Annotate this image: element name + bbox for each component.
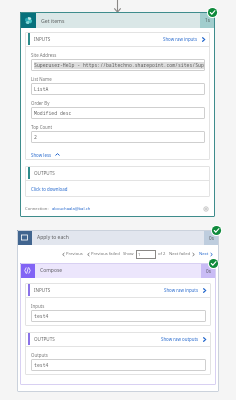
staticText: Next [199, 251, 209, 257]
button[interactable]: Next failed [169, 251, 196, 257]
button[interactable]: Apply to each [17, 230, 219, 245]
staticText: Previous failed [91, 251, 120, 257]
staticText: Show raw inputs [164, 287, 199, 293]
button[interactable]: Next [199, 251, 214, 257]
staticText: Get items [41, 17, 65, 24]
staticText: Outputs [31, 352, 48, 358]
button[interactable]: Show less [31, 151, 61, 158]
staticText: Order By [31, 100, 50, 106]
staticText: 2 [34, 134, 37, 141]
staticText: Modified desc [34, 110, 72, 117]
staticText: List Name [31, 76, 52, 82]
staticText: INPUTS [34, 287, 51, 293]
staticText: Connection: [25, 206, 49, 212]
staticText: Superuser-Help - https://baltechno.share… [34, 62, 205, 69]
staticText: 0s [206, 268, 211, 274]
staticText: ListA [34, 86, 49, 93]
staticText: Show less [31, 152, 52, 158]
button[interactable]: Click to download [31, 186, 68, 192]
staticText: Apply to each [37, 234, 69, 241]
staticText: test4 [34, 313, 49, 320]
staticText: Show raw outputs [161, 336, 199, 342]
button[interactable]: INPUTS [25, 32, 210, 46]
staticText: Show raw inputs [163, 36, 198, 42]
staticText: Previous [66, 251, 83, 257]
staticText: of 2 [158, 251, 166, 257]
staticText: Show [123, 251, 134, 257]
staticText: Site Address [31, 52, 57, 58]
staticText: 0s [209, 235, 214, 241]
staticText: OUTPUTS [34, 170, 55, 176]
button[interactable]: OUTPUTS [25, 332, 211, 346]
staticText: 1s [205, 17, 210, 23]
staticText: OUTPUTS [34, 336, 55, 342]
staticText: test4 [34, 362, 49, 369]
button[interactable]: Get items [20, 12, 215, 28]
staticText: 1 [138, 252, 141, 258]
staticText: Compose [40, 267, 63, 274]
button[interactable]: Connection settings [202, 205, 210, 213]
button[interactable]: OUTPUTS [25, 166, 210, 180]
button[interactable]: INPUTS [25, 283, 211, 297]
staticText: INPUTS [34, 36, 51, 42]
button[interactable]: Previous [61, 251, 83, 257]
button[interactable]: Previous failed [86, 251, 120, 257]
staticText: Top Count [31, 124, 53, 130]
staticText: Next failed [169, 251, 191, 257]
button[interactable]: abouchaala@bal.ch [52, 206, 91, 212]
staticText: Inputs [31, 303, 45, 309]
button[interactable]: Compose [20, 263, 216, 278]
